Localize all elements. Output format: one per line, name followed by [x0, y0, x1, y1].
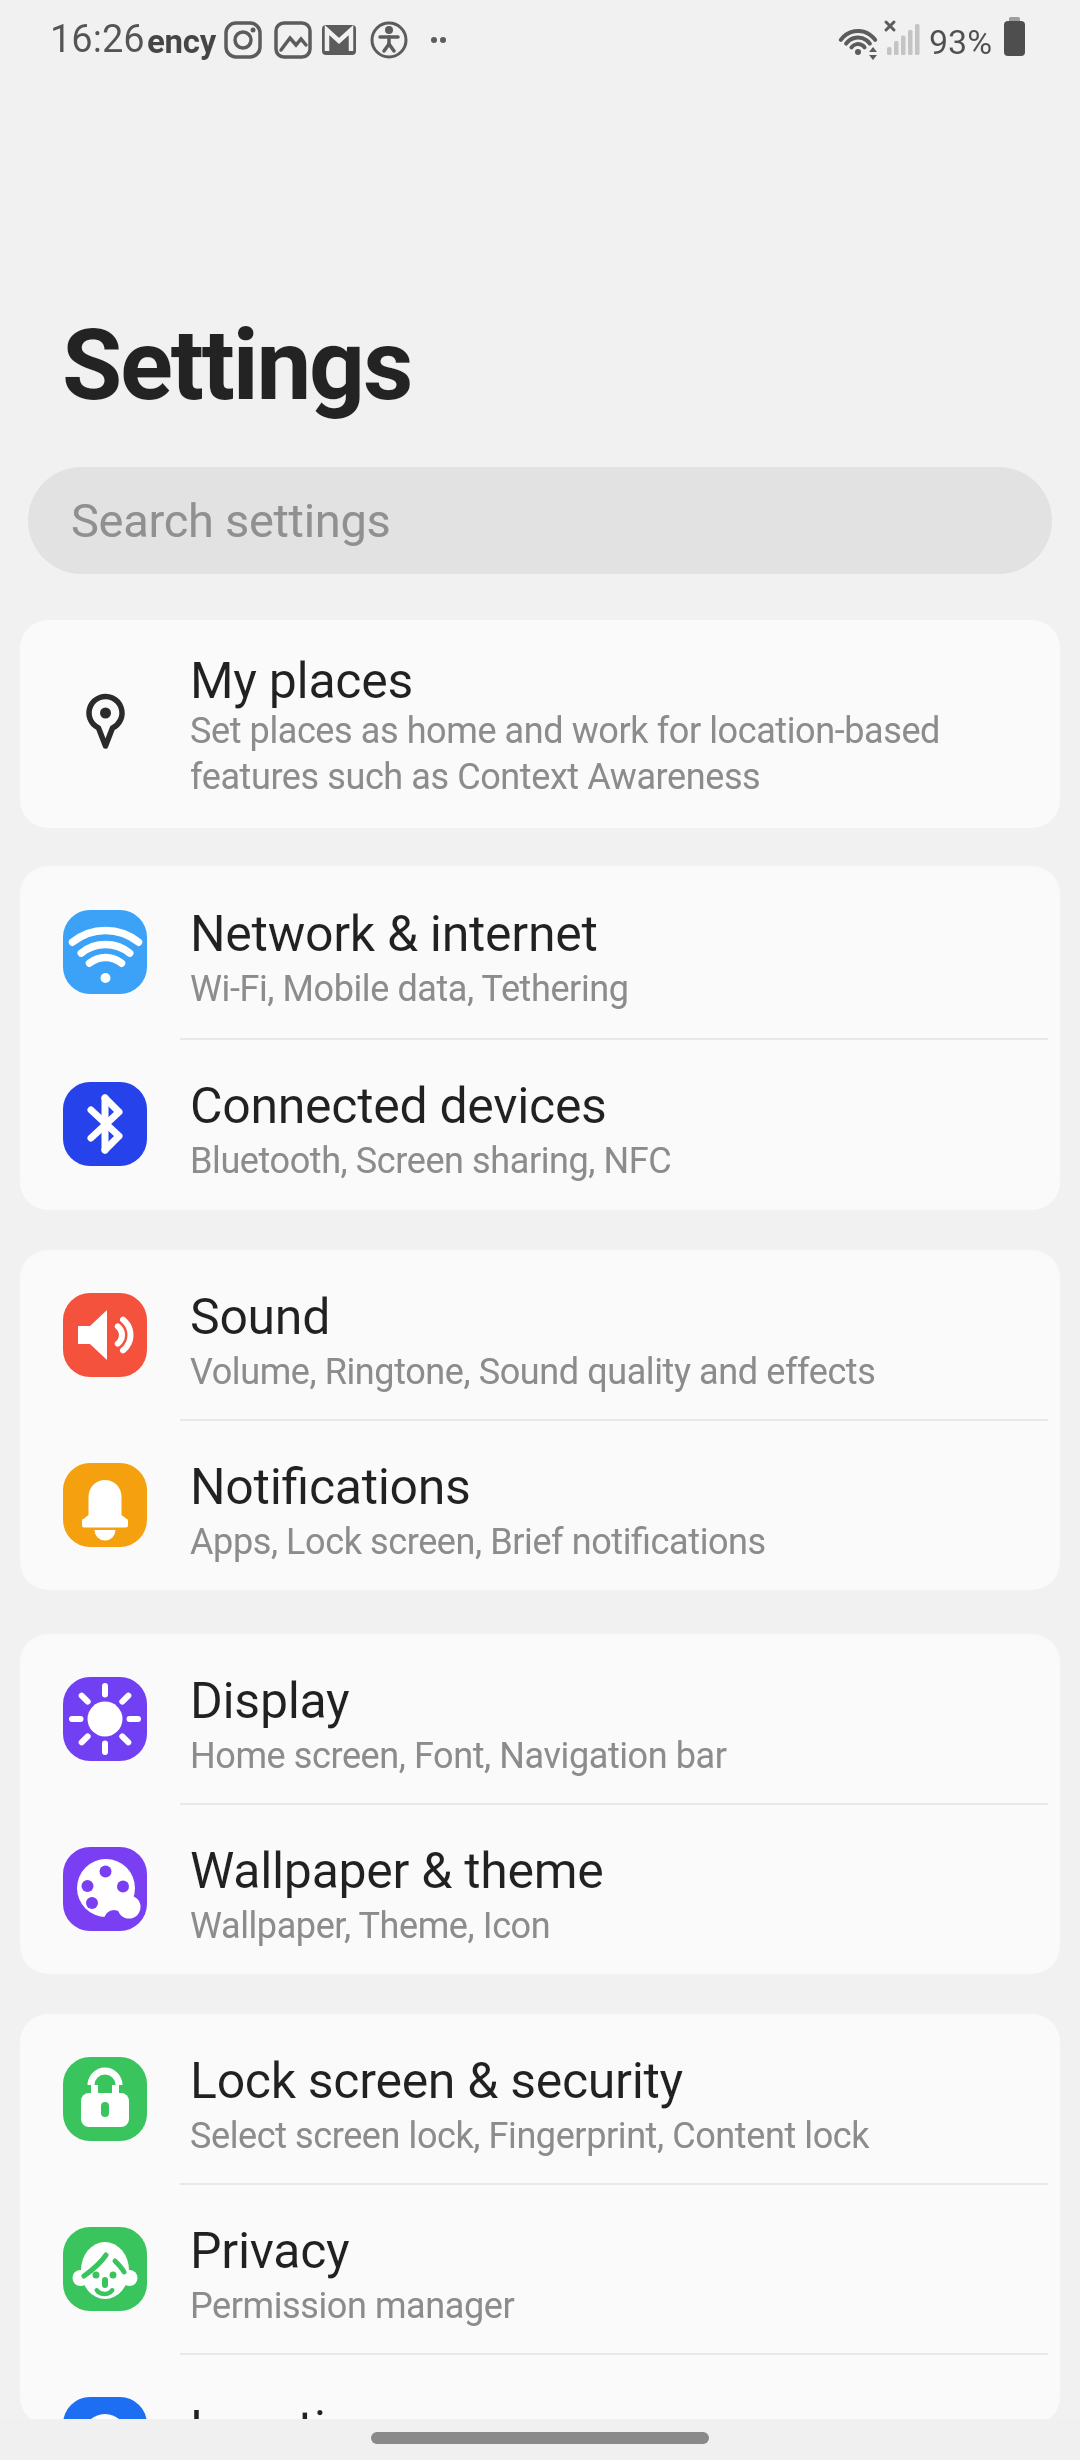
- button[interactable]: Search settings: [28, 467, 1052, 574]
- staticText: Location: [190, 2400, 382, 2459]
- staticText: 16:26: [50, 17, 145, 62]
- staticText: Permission manager: [190, 2285, 515, 2327]
- button[interactable]: Wallpaper & theme: [20, 1804, 1060, 1974]
- button[interactable]: Lock screen & security: [20, 2014, 1060, 2184]
- staticText: Sound: [190, 1288, 331, 1347]
- staticText: Lock screen & security: [190, 2052, 683, 2111]
- button[interactable]: My places: [20, 620, 1060, 828]
- staticText: Search settings: [71, 493, 391, 548]
- button[interactable]: Privacy: [20, 2184, 1060, 2354]
- button[interactable]: Display: [20, 1634, 1060, 1804]
- staticText: Notifications: [190, 1458, 471, 1517]
- staticText: Home screen, Font, Navigation bar: [190, 1735, 727, 1777]
- staticText: Bluetooth, Screen sharing, NFC: [190, 1140, 672, 1182]
- staticText: My places: [190, 652, 413, 711]
- staticText: Wallpaper & theme: [190, 1842, 604, 1901]
- staticText: Wallpaper, Theme, Icon: [190, 1905, 551, 1947]
- staticText: Volume, Ringtone, Sound quality and effe…: [190, 1351, 876, 1393]
- staticText: Privacy: [190, 2222, 350, 2281]
- staticText: Connected devices: [190, 1077, 607, 1136]
- staticText: Select screen lock, Fingerprint, Content…: [190, 2115, 870, 2157]
- staticText: Display: [190, 1672, 350, 1731]
- button[interactable]: Notifications: [20, 1420, 1060, 1590]
- button[interactable]: [371, 2432, 709, 2444]
- staticText: Network & internet: [190, 905, 598, 964]
- staticText: ency: [147, 22, 216, 61]
- staticText: Set places as home and work for location…: [190, 710, 941, 798]
- button[interactable]: Network & internet: [20, 866, 1060, 1038]
- button[interactable]: Sound: [20, 1250, 1060, 1420]
- button[interactable]: Connected devices: [20, 1038, 1060, 1210]
- staticText: 93%: [929, 22, 993, 62]
- staticText: Apps, Lock screen, Brief notifications: [190, 1521, 766, 1563]
- staticText: Settings: [62, 308, 412, 423]
- staticText: Wi-Fi, Mobile data, Tethering: [190, 968, 629, 1010]
